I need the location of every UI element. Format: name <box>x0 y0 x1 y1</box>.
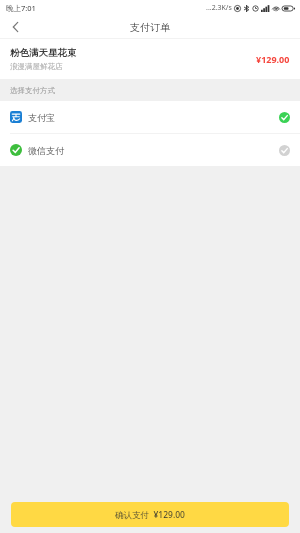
button[interactable]: Not selected <box>279 145 290 156</box>
staticText: 粉色满天星花束 <box>10 47 77 59</box>
staticText: 浪漫满屋鲜花店 <box>10 62 63 71</box>
staticText: 确认支付 ¥129.00 <box>115 509 185 521</box>
staticText: ...2.3K/s <box>206 3 232 13</box>
button[interactable]: 粉色满天星花束 <box>0 39 300 79</box>
button[interactable]: 支付宝 <box>0 101 300 133</box>
staticText: 微信支付 <box>28 145 64 156</box>
staticText: 支付宝 <box>28 112 55 123</box>
button[interactable]: Back <box>0 16 30 38</box>
staticText: 选择支付方式 <box>10 86 55 95</box>
button[interactable]: 确认支付 ¥129.00 <box>11 502 289 527</box>
staticText: ¥129.00 <box>256 53 290 65</box>
staticText: 支付订单 <box>130 21 170 34</box>
button[interactable]: 微信支付 <box>0 134 300 166</box>
staticText: 晚上7:01 <box>6 3 36 13</box>
button[interactable]: Selected <box>279 112 290 123</box>
